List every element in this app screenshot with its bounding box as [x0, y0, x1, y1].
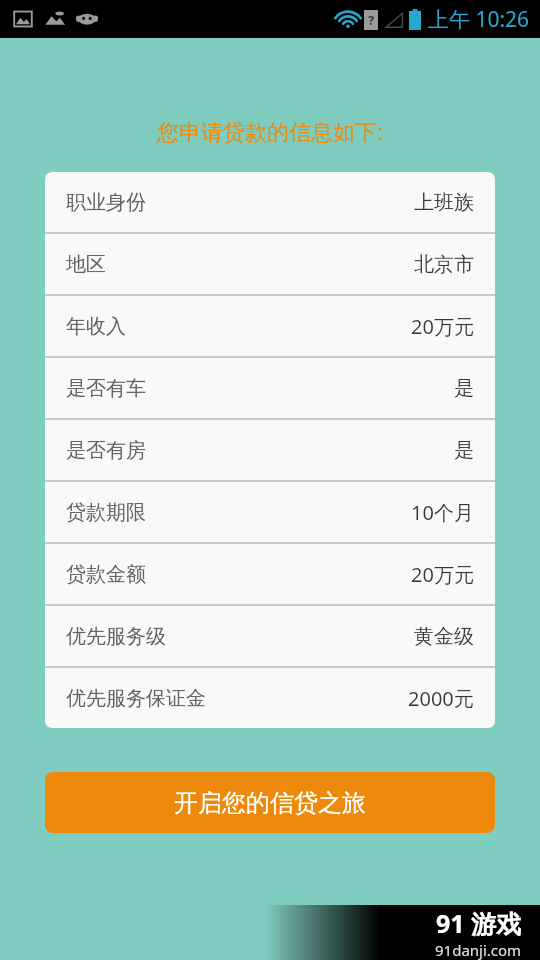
staticText: 职业身份	[66, 190, 146, 215]
staticText: 黄金级	[414, 624, 474, 649]
staticText: 上午 10:26	[428, 5, 530, 34]
staticText: 20万元	[411, 313, 474, 340]
staticText: 北京市	[414, 252, 474, 277]
staticText: 91danji.com	[435, 940, 522, 960]
staticText: 优先服务保证金	[66, 686, 206, 711]
button[interactable]: 优先服务级	[45, 606, 495, 666]
staticText: 91 游戏	[436, 906, 522, 940]
button[interactable]: 年收入	[45, 296, 495, 356]
button[interactable]: 地区	[45, 234, 495, 294]
button[interactable]: 贷款期限	[45, 482, 495, 542]
staticText: 贷款金额	[66, 562, 146, 587]
staticText: 地区	[66, 252, 106, 277]
staticText: 是否有房	[66, 438, 146, 463]
staticText: 贷款期限	[66, 500, 146, 525]
button[interactable]: 是否有房	[45, 420, 495, 480]
staticText: 是	[454, 438, 474, 463]
staticText: 年收入	[66, 314, 126, 339]
staticText: 上班族	[414, 190, 474, 215]
staticText: 开启您的信贷之旅	[174, 788, 366, 818]
button[interactable]: 贷款金额	[45, 544, 495, 604]
staticText: 10个月	[411, 499, 474, 526]
staticText: ?	[368, 11, 375, 29]
button[interactable]: 开启您的信贷之旅	[45, 772, 495, 833]
staticText: 是	[454, 376, 474, 401]
button[interactable]: 职业身份	[45, 172, 495, 232]
button[interactable]: 是否有车	[45, 358, 495, 418]
staticText: 20万元	[411, 561, 474, 588]
staticText: 是否有车	[66, 376, 146, 401]
staticText: 优先服务级	[66, 624, 166, 649]
staticText: 您申请贷款的信息如下:	[0, 116, 540, 146]
staticText: 2000元	[408, 685, 474, 712]
button[interactable]: 优先服务保证金	[45, 668, 495, 728]
